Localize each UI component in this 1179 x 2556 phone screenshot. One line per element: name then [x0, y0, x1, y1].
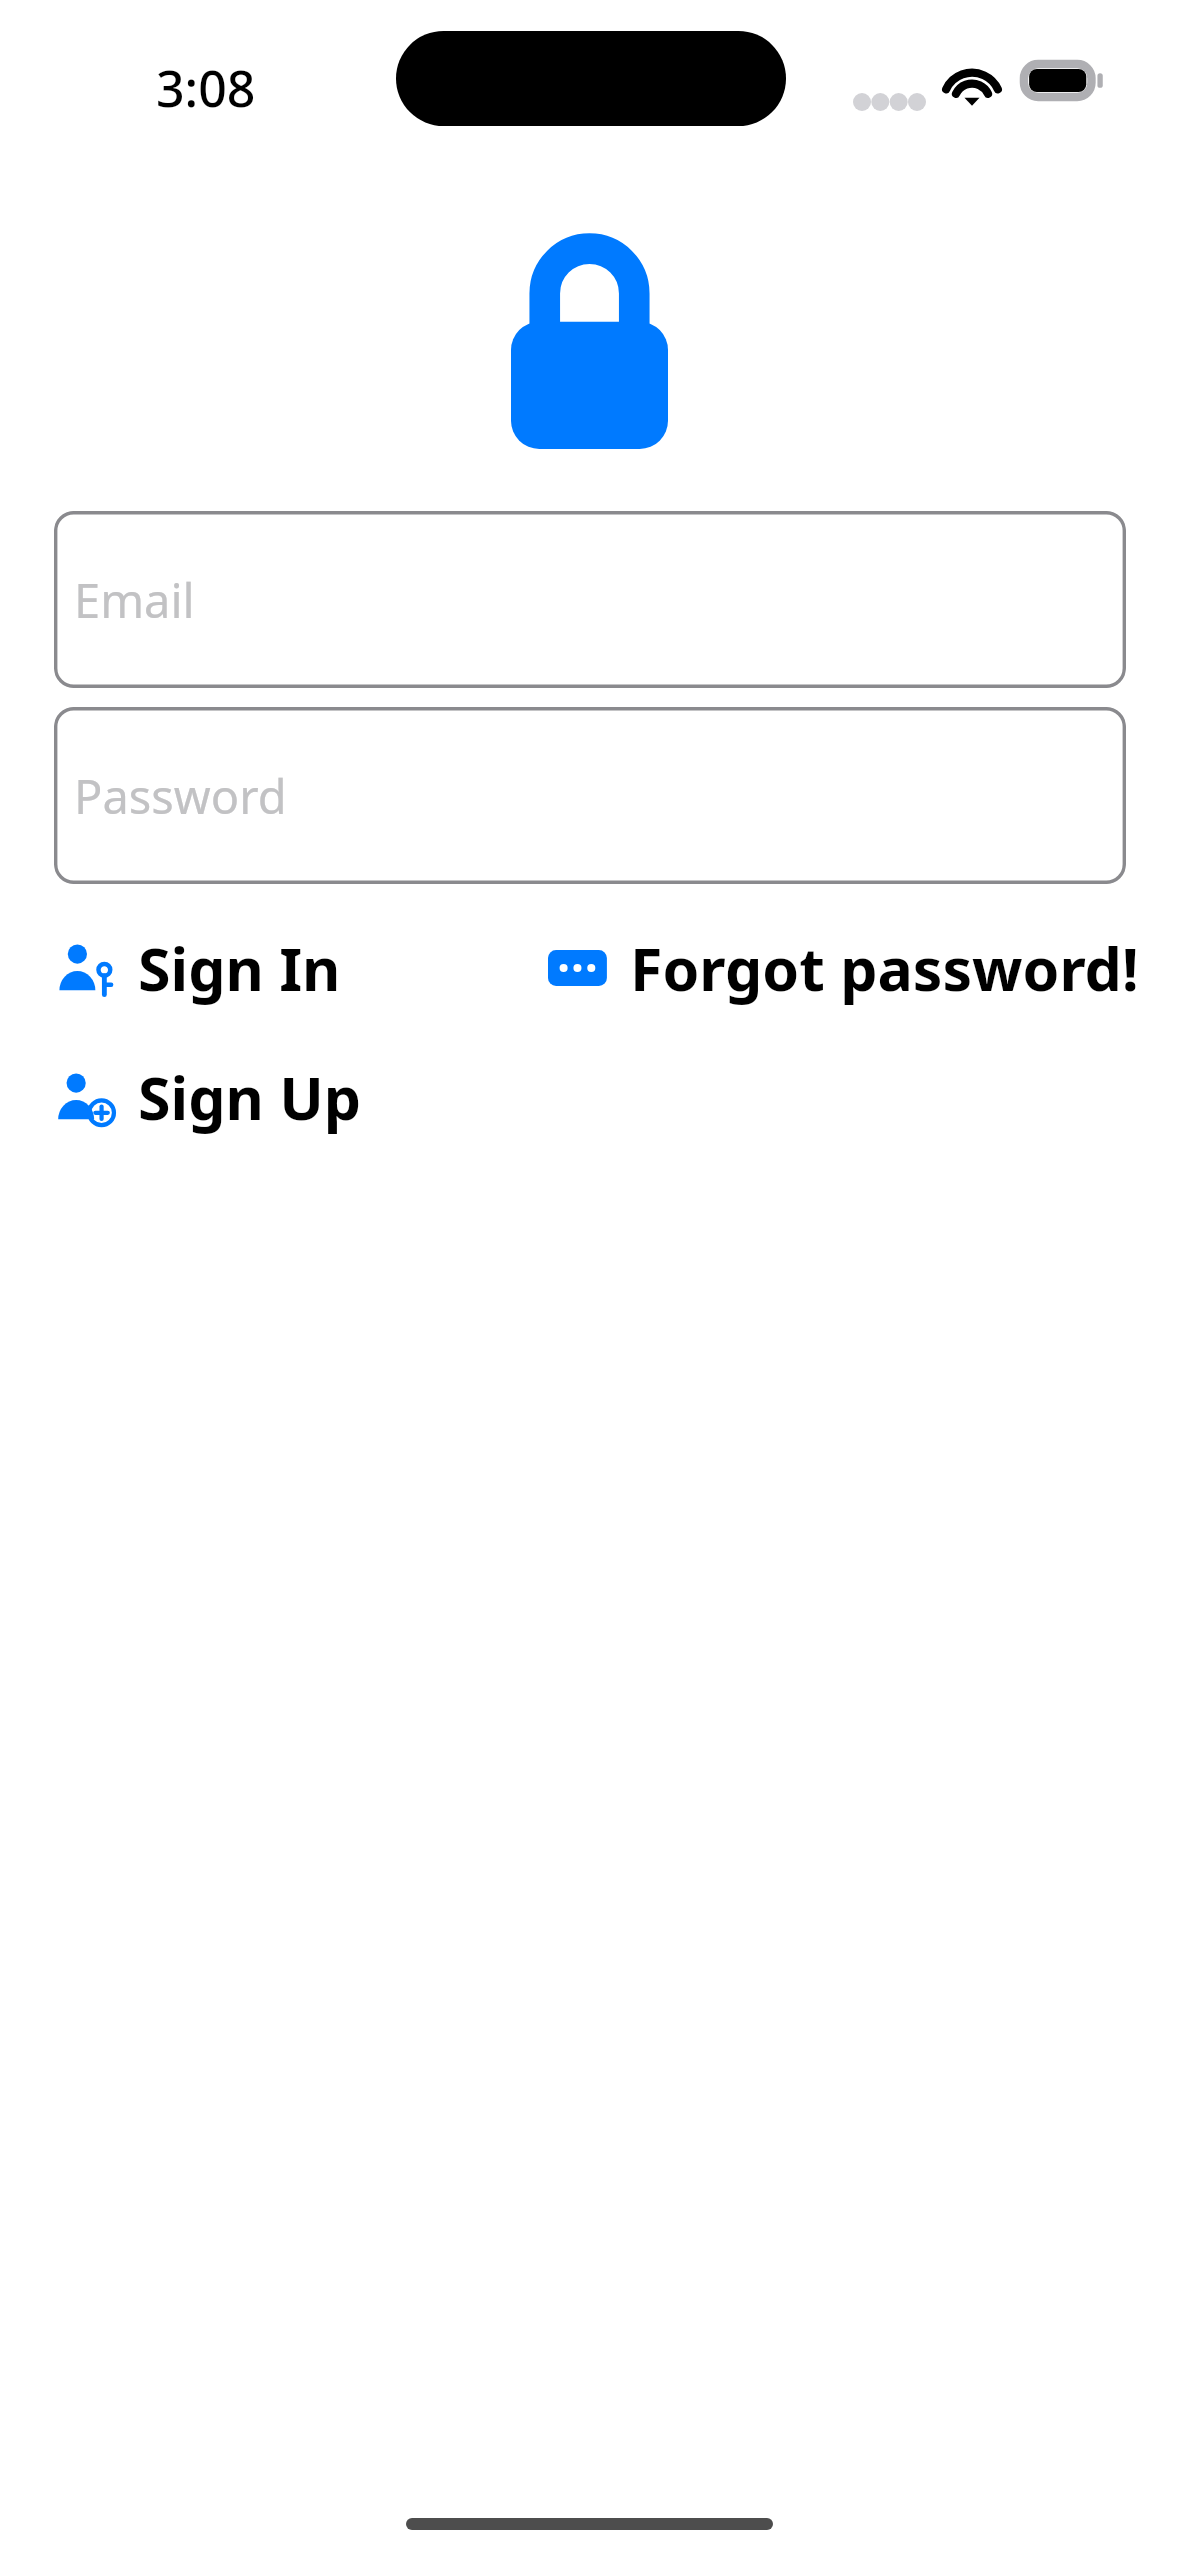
button[interactable]: Password — [54, 707, 1126, 884]
staticText: 3:08 — [156, 54, 256, 122]
staticText: Email — [74, 568, 195, 632]
staticText: Sign Up — [138, 1057, 362, 1137]
staticText: Sign In — [138, 928, 341, 1008]
button[interactable]: Sign In — [54, 924, 343, 1012]
button[interactable]: Sign Up — [54, 1053, 364, 1141]
staticText: Password — [74, 764, 287, 828]
button[interactable]: Email — [54, 511, 1126, 688]
staticText: Forgot password! — [630, 928, 1139, 1008]
button[interactable]: Forgot password — [546, 924, 1141, 1012]
